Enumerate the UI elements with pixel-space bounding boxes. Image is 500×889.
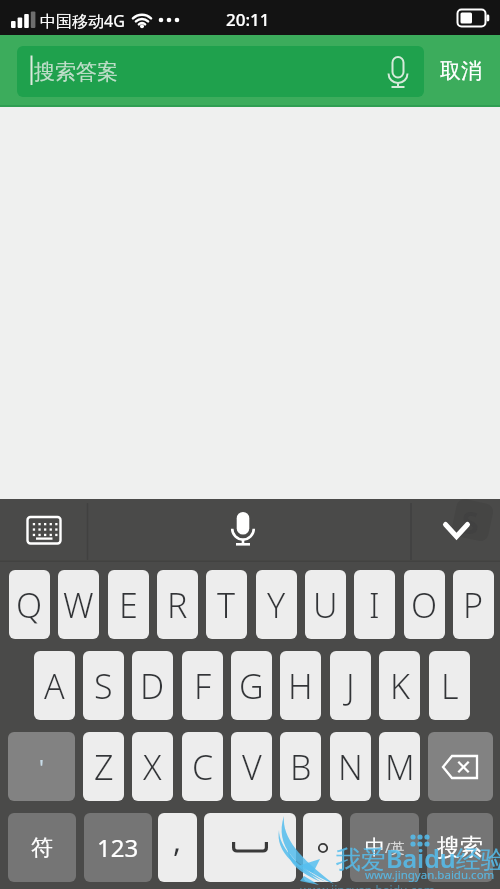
- button[interactable]: Q: [9, 570, 50, 639]
- staticText: P: [463, 582, 484, 628]
- button[interactable]: [200, 501, 286, 559]
- button[interactable]: Y: [256, 570, 297, 639]
- button[interactable]: [12, 505, 76, 557]
- staticText: O: [411, 582, 438, 628]
- button[interactable]: [428, 732, 493, 801]
- staticText: N: [338, 744, 363, 790]
- button[interactable]: E: [108, 570, 149, 639]
- button[interactable]: Z: [83, 732, 124, 801]
- button[interactable]: D: [132, 651, 173, 720]
- button[interactable]: H: [280, 651, 321, 720]
- staticText: Q: [16, 582, 43, 628]
- staticText: L: [441, 663, 459, 709]
- staticText: H: [288, 663, 313, 709]
- button[interactable]: 搜索: [427, 813, 493, 882]
- button[interactable]: R: [157, 570, 198, 639]
- button[interactable]: J: [330, 651, 371, 720]
- staticText: D: [140, 663, 165, 709]
- staticText: W: [63, 582, 94, 628]
- staticText: K: [390, 663, 410, 709]
- staticText: I: [369, 582, 380, 628]
- button[interactable]: T: [206, 570, 247, 639]
- button[interactable]: ,: [158, 813, 197, 882]
- button[interactable]: W: [58, 570, 99, 639]
- staticText: /英: [385, 838, 405, 857]
- staticText: ,: [173, 820, 182, 861]
- button[interactable]: [425, 505, 489, 557]
- button[interactable]: B: [280, 732, 321, 801]
- button[interactable]: [204, 813, 296, 882]
- button[interactable]: X: [132, 732, 173, 801]
- staticText: 我爱Baidu经验: [336, 841, 500, 875]
- button[interactable]: C: [182, 732, 223, 801]
- staticText: 搜索答案: [34, 59, 118, 85]
- button[interactable]: L: [429, 651, 470, 720]
- staticText: J: [346, 663, 355, 709]
- button[interactable]: S: [83, 651, 124, 720]
- staticText: 符: [31, 834, 53, 862]
- staticText: 中国移动4G: [40, 10, 125, 32]
- button[interactable]: O: [404, 570, 445, 639]
- staticText: S: [462, 502, 479, 543]
- button[interactable]: I: [354, 570, 395, 639]
- staticText: X: [143, 744, 162, 790]
- staticText: M: [385, 744, 415, 790]
- staticText: V: [242, 744, 262, 790]
- button[interactable]: P: [453, 570, 494, 639]
- staticText: G: [239, 663, 264, 709]
- staticText: 取消: [440, 58, 482, 84]
- staticText: F: [194, 663, 212, 709]
- staticText: R: [167, 582, 188, 628]
- button[interactable]: K: [379, 651, 420, 720]
- staticText: C: [192, 744, 214, 790]
- button[interactable]: G: [231, 651, 272, 720]
- button[interactable]: A: [34, 651, 75, 720]
- button[interactable]: 中: [350, 813, 419, 882]
- staticText: 123: [97, 831, 139, 864]
- staticText: www.jingyan.baidu.com: [365, 867, 495, 883]
- button[interactable]: N: [330, 732, 371, 801]
- button[interactable]: 取消: [430, 47, 492, 95]
- staticText: A: [44, 663, 65, 709]
- button[interactable]: V: [231, 732, 272, 801]
- staticText: B: [290, 744, 312, 790]
- staticText: 20:11: [226, 8, 270, 31]
- button[interactable]: 搜索答案: [17, 46, 424, 97]
- button[interactable]: M: [379, 732, 420, 801]
- staticText: Z: [94, 744, 114, 790]
- staticText: www.jingyan.baidu.com: [300, 882, 435, 889]
- staticText: ': [39, 752, 44, 782]
- button[interactable]: U: [305, 570, 346, 639]
- button[interactable]: 123: [84, 813, 152, 882]
- staticText: S: [94, 663, 113, 709]
- staticText: Y: [267, 582, 286, 628]
- button[interactable]: F: [182, 651, 223, 720]
- staticText: U: [313, 582, 338, 628]
- button[interactable]: [303, 813, 342, 882]
- staticText: T: [217, 582, 236, 628]
- button[interactable]: ': [8, 732, 75, 801]
- staticText: 中: [365, 835, 385, 860]
- button[interactable]: 符: [8, 813, 76, 882]
- staticText: E: [119, 582, 138, 628]
- staticText: 搜索: [437, 833, 483, 862]
